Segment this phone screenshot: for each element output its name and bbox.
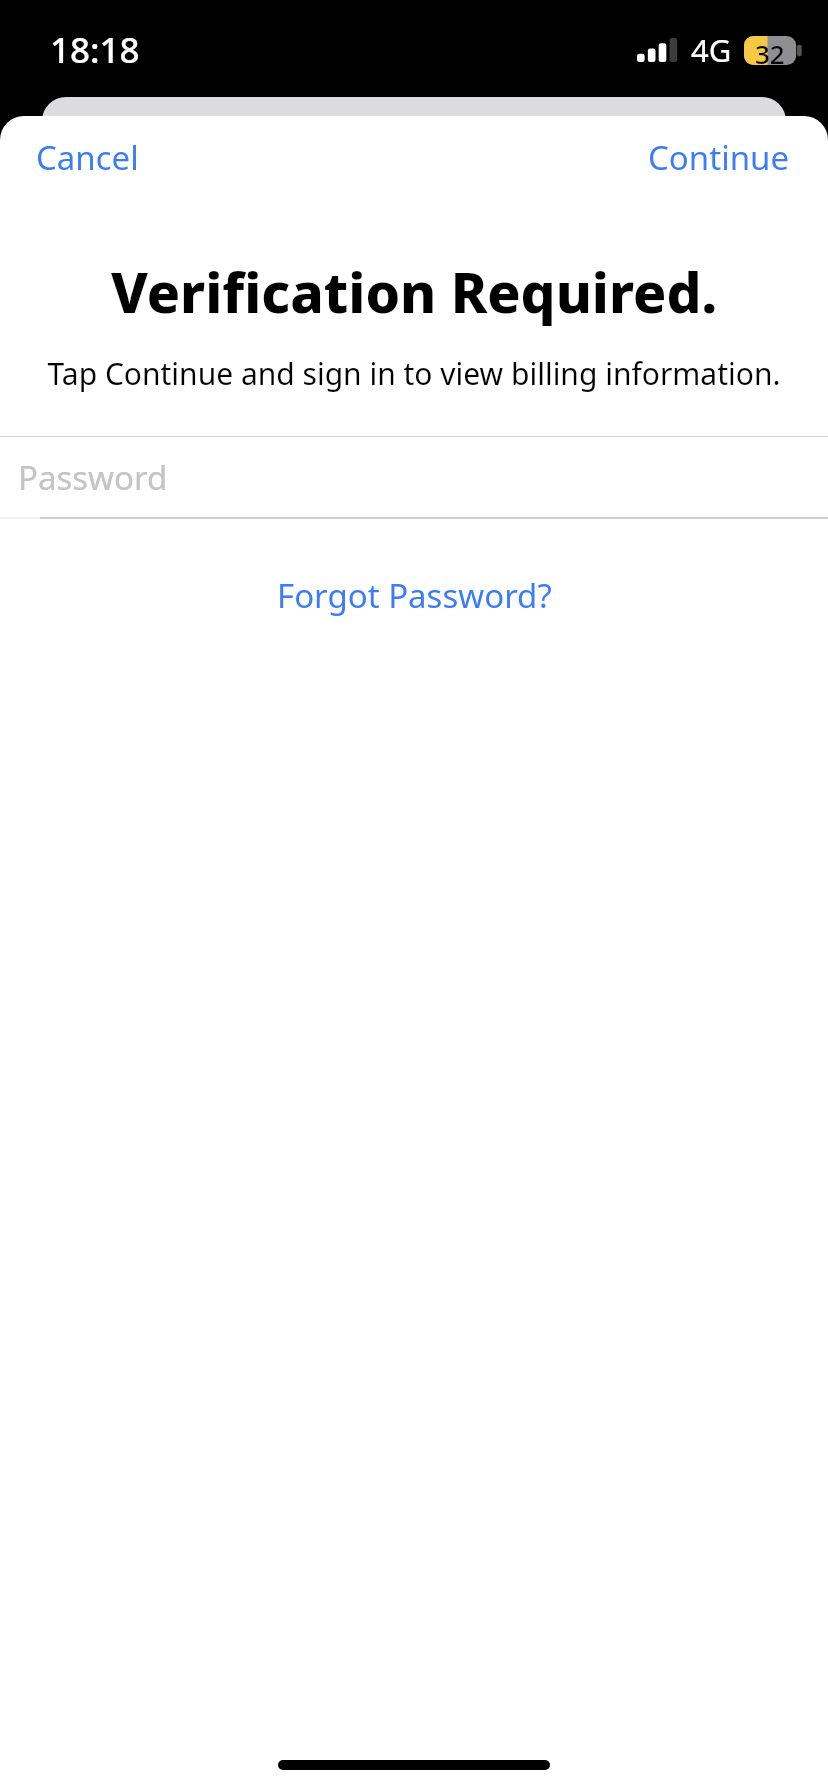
staticText: 18:18	[50, 26, 140, 74]
staticText: Verification Required.	[20, 254, 808, 329]
staticText: Forgot Password?	[277, 573, 552, 618]
staticText: Continue	[648, 135, 790, 180]
staticText: Cancel	[36, 135, 139, 180]
staticText: 32	[755, 36, 785, 65]
button[interactable]: Forgot Password?	[257, 565, 572, 626]
button[interactable]: Cancel	[0, 121, 175, 194]
button[interactable]: Password	[0, 437, 828, 517]
staticText: 4G	[691, 29, 732, 71]
button[interactable]: Continue	[610, 121, 828, 194]
staticText: Password	[18, 455, 168, 500]
staticText: Tap Continue and sign in to view billing…	[20, 353, 808, 394]
